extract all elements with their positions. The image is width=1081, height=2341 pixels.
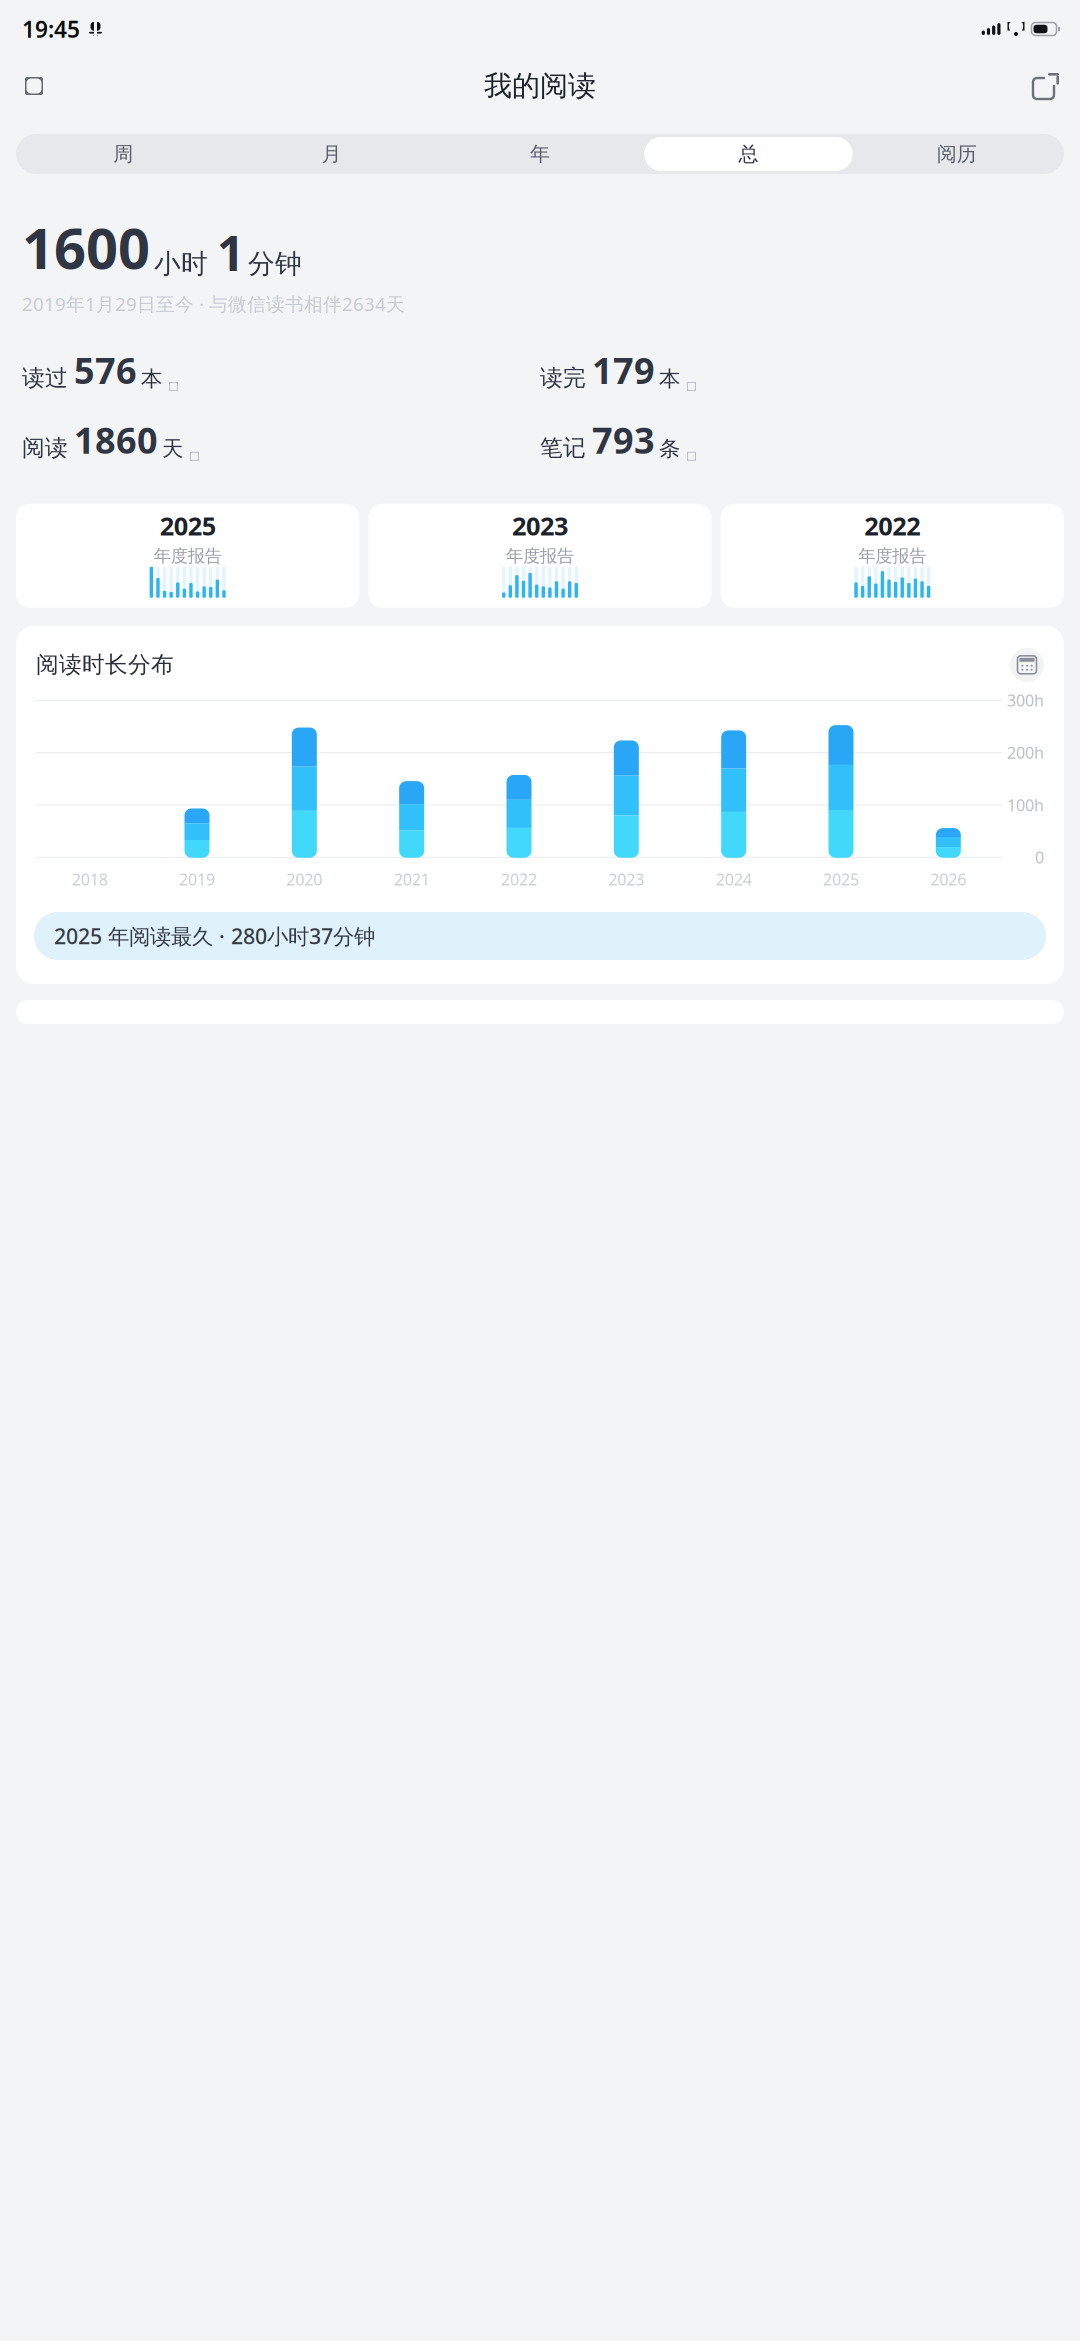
staticText: 2018	[72, 869, 108, 890]
staticText: 2025	[160, 509, 216, 542]
staticText: 1860	[74, 416, 158, 464]
staticText: 2026	[930, 869, 966, 890]
staticText: 条	[659, 436, 680, 462]
staticText: 2024	[716, 869, 752, 890]
staticText: 576	[74, 346, 137, 394]
staticText: 本	[141, 366, 162, 392]
button[interactable]: 月	[227, 137, 436, 171]
staticText: 阅读	[22, 434, 68, 462]
staticText: 阅历	[937, 142, 977, 166]
button[interactable]: 2023	[368, 504, 712, 608]
staticText: 179	[592, 346, 655, 394]
staticText: 2020	[286, 869, 322, 890]
button[interactable]: 笔记	[540, 416, 1058, 464]
staticText: 2022	[501, 869, 537, 890]
button[interactable]: 读完	[540, 346, 1058, 394]
button[interactable]: 阅读	[22, 416, 540, 464]
staticText: 2021	[394, 869, 430, 890]
button[interactable]: 2025 年阅读最久 · 280小时37分钟	[34, 912, 1046, 960]
button[interactable]: 年	[436, 137, 644, 171]
staticText: 本	[659, 366, 680, 392]
staticText: 读过	[22, 364, 68, 392]
staticText: 793	[592, 416, 655, 464]
staticText: 月	[322, 142, 342, 166]
staticText: 1	[217, 221, 244, 284]
staticText: 2025	[823, 869, 859, 890]
staticText: 分钟	[248, 248, 302, 280]
button[interactable]: 选择日期	[1010, 648, 1044, 682]
staticText: 2023	[608, 869, 644, 890]
staticText: 年度报告	[154, 545, 222, 567]
button[interactable]: 总	[644, 137, 853, 171]
staticText: 读完	[540, 364, 586, 392]
button[interactable]: 读过	[22, 346, 540, 394]
button[interactable]: 阅历	[853, 137, 1061, 171]
staticText: 2022	[864, 509, 920, 542]
staticText: 阅读时长分布	[36, 651, 174, 679]
staticText: 周	[113, 142, 133, 166]
staticText: 2023	[512, 509, 568, 542]
staticText: 0	[1035, 847, 1044, 868]
staticText: 200h	[1007, 742, 1044, 763]
staticText: 年度报告	[506, 545, 574, 567]
staticText: 1600	[22, 210, 150, 284]
button[interactable]: 周	[19, 137, 227, 171]
staticText: 小时	[154, 248, 208, 280]
staticText: 年	[530, 142, 550, 166]
staticText: 2025 年阅读最久 · 280小时37分钟	[54, 922, 375, 950]
staticText: 年度报告	[858, 545, 926, 567]
staticText: 2019	[179, 869, 215, 890]
staticText: 2019年1月29日至今 · 与微信读书相伴2634天	[22, 291, 405, 316]
staticText: 笔记	[540, 434, 586, 462]
button[interactable]: 2025	[16, 504, 359, 608]
button[interactable]: 分享	[1022, 62, 1070, 110]
staticText: 天	[162, 436, 183, 462]
staticText: 19:45	[22, 14, 80, 44]
staticText: 我的阅读	[484, 69, 596, 103]
staticText: 总	[738, 142, 758, 166]
button[interactable]: 返回	[10, 62, 58, 110]
staticText: 300h	[1007, 690, 1044, 711]
button[interactable]: 2022	[721, 504, 1064, 608]
staticText: 100h	[1007, 794, 1044, 815]
